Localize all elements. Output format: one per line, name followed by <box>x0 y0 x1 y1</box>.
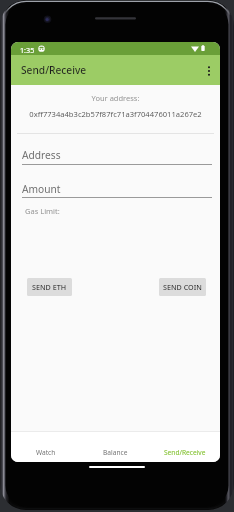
staticText: Send/Receive <box>21 63 87 77</box>
staticText: Watch <box>36 448 56 457</box>
button[interactable]: Watch <box>11 431 80 462</box>
button[interactable]: Balance <box>80 431 150 462</box>
staticText: Address <box>22 148 61 162</box>
staticText: Your address: <box>11 93 220 103</box>
button[interactable]: More options <box>198 56 220 85</box>
button[interactable]: SEND ETH <box>27 278 72 296</box>
staticText: SEND ETH <box>32 282 67 292</box>
staticText: 1:35 <box>20 45 35 55</box>
staticText: Balance <box>103 448 128 457</box>
button[interactable]: SEND COIN <box>159 278 206 296</box>
staticText: Gas Limit: <box>25 206 60 216</box>
button[interactable]: Send/Receive <box>150 431 220 462</box>
staticText: Amount <box>22 182 61 196</box>
staticText: SEND COIN <box>163 282 202 292</box>
staticText: Send/Receive <box>164 448 206 457</box>
staticText: 0xff7734a4b3c2b57f87fc71a3f704476011a267… <box>11 109 220 119</box>
